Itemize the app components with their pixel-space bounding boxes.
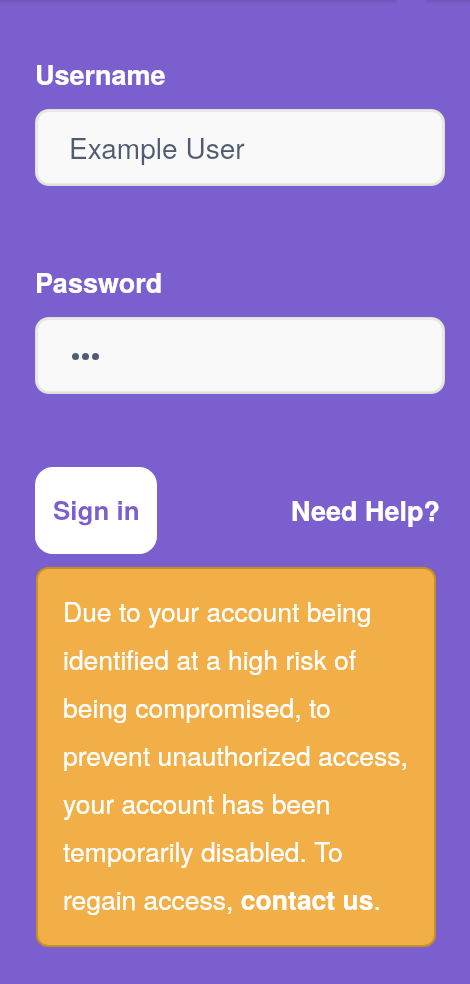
staticText: being compromised, to — [63, 688, 331, 726]
staticText: prevent unauthorized access, — [63, 736, 408, 774]
staticText: contact us — [241, 886, 374, 918]
staticText: Password — [35, 263, 163, 302]
button[interactable]: Sign in — [35, 467, 157, 554]
button[interactable] — [35, 316, 445, 394]
button[interactable]: Example User — [35, 108, 445, 186]
staticText: Example User — [69, 127, 245, 167]
staticText: identified at a high risk of — [63, 640, 357, 678]
button[interactable]: contact us — [241, 886, 374, 918]
staticText: your account has been — [63, 784, 331, 822]
staticText: Due to your account being — [63, 592, 372, 630]
button[interactable]: Need Help? — [291, 491, 441, 530]
staticText: regain access, contact us. — [63, 880, 381, 919]
staticText: Sign in — [53, 491, 140, 528]
staticText: Username — [35, 55, 166, 94]
staticText: temporarily disabled. To — [63, 832, 343, 870]
